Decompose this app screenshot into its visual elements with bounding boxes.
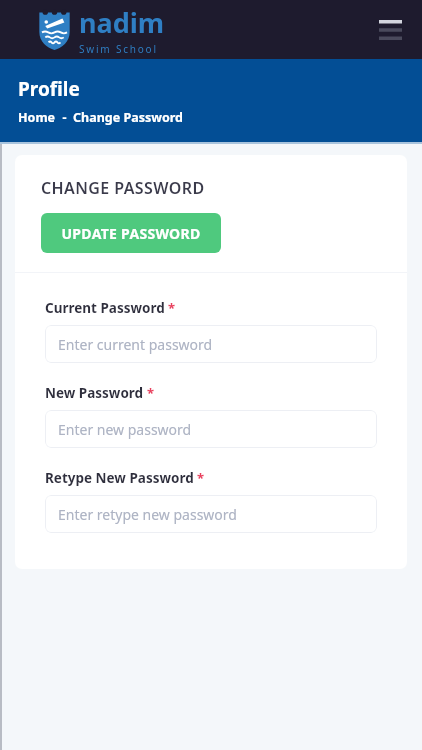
button[interactable]: Home: [18, 109, 56, 126]
staticText: Swim School: [79, 42, 158, 56]
staticText: Enter new password: [58, 420, 192, 439]
button[interactable]: Enter retype new password: [45, 495, 377, 533]
staticText: New Password: [45, 384, 144, 402]
staticText: CHANGE PASSWORD: [41, 177, 205, 199]
staticText: Profile: [18, 76, 80, 102]
staticText: Current Password: [45, 299, 165, 317]
staticText: *: [147, 384, 155, 402]
staticText: nadim: [79, 4, 165, 41]
staticText: UPDATE PASSWORD: [61, 224, 201, 243]
staticText: Enter retype new password: [58, 505, 237, 524]
staticText: Enter current password: [58, 335, 213, 354]
staticText: *: [197, 469, 205, 487]
button[interactable]: Open navigation menu: [375, 15, 405, 45]
staticText: - Change Password: [56, 109, 183, 126]
button[interactable]: Enter current password: [45, 325, 377, 363]
button[interactable]: UPDATE PASSWORD: [41, 213, 221, 253]
button[interactable]: Enter new password: [45, 410, 377, 448]
staticText: *: [168, 299, 176, 317]
staticText: Retype New Password: [45, 469, 194, 487]
